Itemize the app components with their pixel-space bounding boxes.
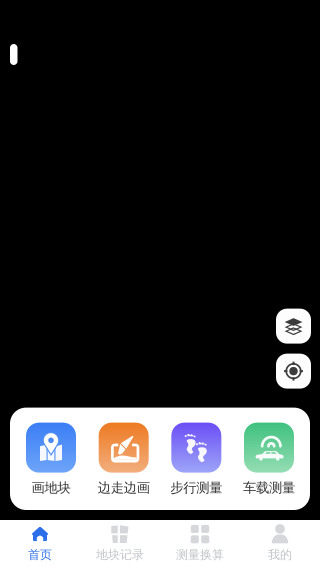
button[interactable]: 画地块 xyxy=(19,423,83,496)
button[interactable]: 边走边画 xyxy=(92,423,156,496)
button[interactable]: 步行测量 xyxy=(164,423,228,496)
button[interactable]: 地块记录 xyxy=(80,520,160,568)
button[interactable]: Map layers xyxy=(276,309,311,344)
button[interactable]: 首页 xyxy=(0,520,80,568)
staticText: 车载测量 xyxy=(243,480,295,496)
staticText: 测量换算 xyxy=(176,547,224,562)
staticText: 步行测量 xyxy=(170,480,222,496)
button[interactable]: Locate me xyxy=(276,354,311,389)
button[interactable]: 我的 xyxy=(240,520,320,568)
button[interactable]: 测量换算 xyxy=(160,520,240,568)
staticText: 画地块 xyxy=(31,480,70,496)
staticText: 边走边画 xyxy=(98,480,150,496)
staticText: 首页 xyxy=(28,547,52,562)
staticText: 地块记录 xyxy=(96,547,144,562)
button[interactable]: 车载测量 xyxy=(237,423,301,496)
staticText: 我的 xyxy=(268,547,292,562)
